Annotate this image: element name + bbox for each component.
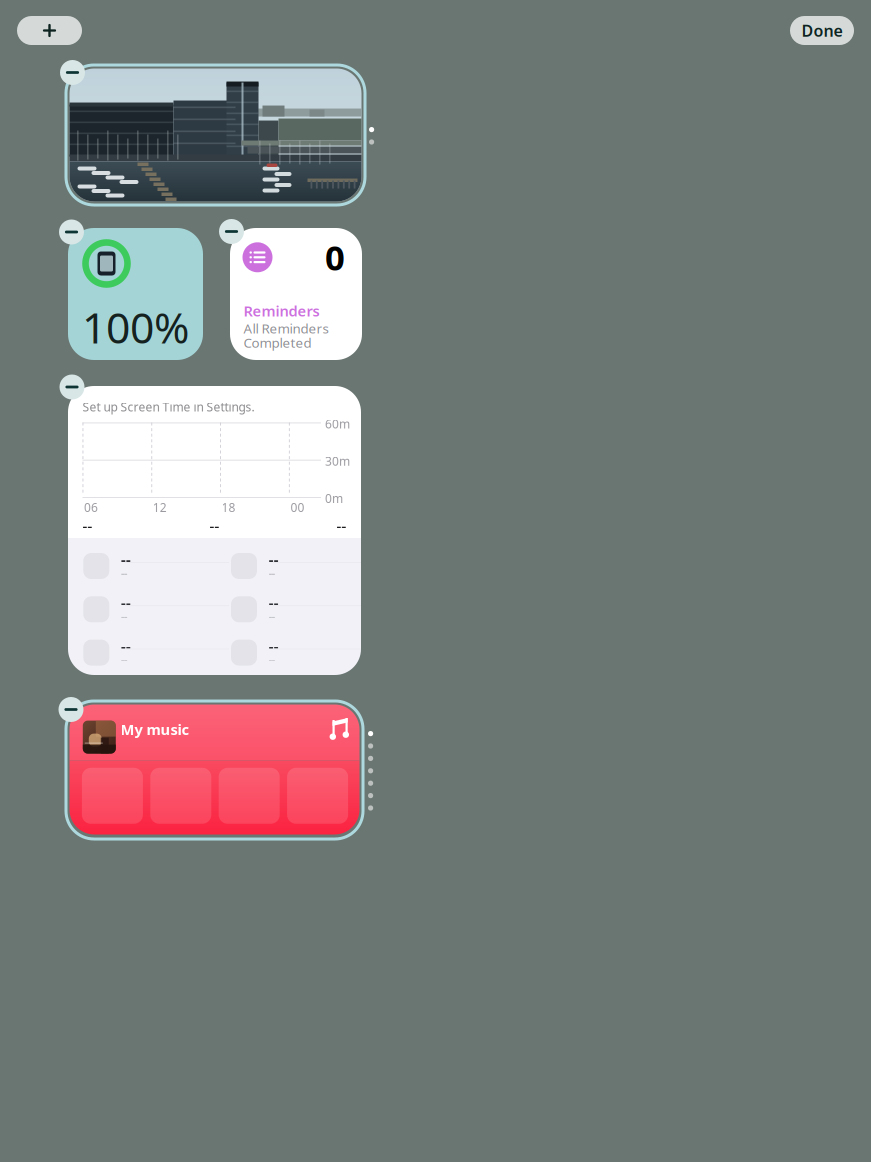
staticText: -- bbox=[121, 636, 131, 656]
staticText: 0 bbox=[325, 234, 345, 280]
staticText: Completed bbox=[243, 334, 311, 351]
button[interactable]: Done bbox=[790, 16, 854, 45]
staticText: -- bbox=[269, 636, 279, 656]
staticText: Set up Screen Time in Settings. bbox=[82, 399, 254, 415]
staticText: -- bbox=[121, 652, 127, 666]
staticText: 00 bbox=[290, 499, 304, 515]
staticText: 60m bbox=[325, 416, 350, 432]
button[interactable]: Remove widget bbox=[219, 219, 244, 244]
staticText: -- bbox=[82, 516, 92, 535]
staticText: -- bbox=[269, 609, 275, 623]
staticText: -- bbox=[121, 565, 127, 580]
staticText: -- bbox=[269, 593, 279, 612]
button[interactable]: Remove widget bbox=[58, 697, 83, 722]
staticText: -- bbox=[121, 549, 131, 569]
staticText: All Reminders bbox=[243, 319, 328, 337]
staticText: -- bbox=[121, 593, 131, 612]
staticText: 0m bbox=[325, 490, 343, 506]
staticText: Done bbox=[801, 20, 842, 41]
staticText: -- bbox=[269, 549, 279, 569]
staticText: 18 bbox=[222, 499, 236, 515]
staticText: My music bbox=[120, 719, 189, 739]
button[interactable]: Remove widget bbox=[60, 60, 85, 85]
staticText: 06 bbox=[84, 499, 98, 515]
staticText: Reminders bbox=[243, 301, 319, 320]
staticText: -- bbox=[336, 516, 346, 535]
staticText: 100% bbox=[82, 299, 189, 355]
staticText: 12 bbox=[153, 499, 167, 515]
staticText: 30m bbox=[325, 453, 350, 469]
staticText: -- bbox=[269, 565, 275, 580]
staticText: -- bbox=[209, 516, 219, 535]
staticText: -- bbox=[269, 652, 275, 666]
button[interactable]: Add widget bbox=[17, 16, 82, 45]
staticText: -- bbox=[121, 609, 127, 623]
button[interactable]: Remove widget bbox=[59, 219, 84, 244]
button[interactable]: Remove widget bbox=[59, 374, 84, 399]
